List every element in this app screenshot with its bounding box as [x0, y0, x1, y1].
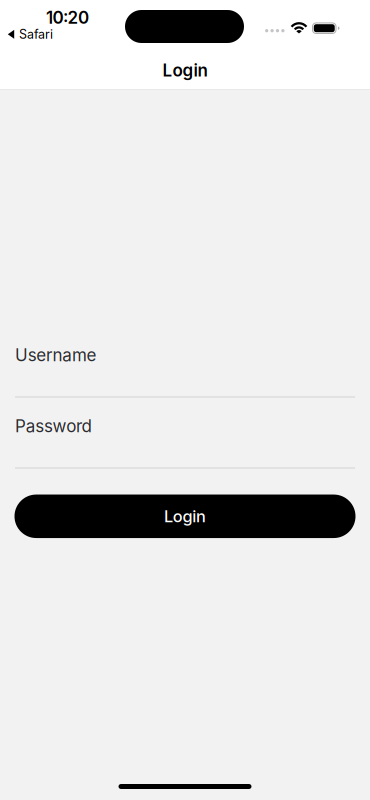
staticText: Username: [15, 345, 97, 365]
staticText: Login: [162, 60, 207, 81]
button[interactable]: Password: [15, 415, 355, 469]
staticText: 10:20: [46, 7, 89, 28]
staticText: Login: [164, 506, 206, 526]
button[interactable]: Login: [14, 494, 355, 538]
staticText: Safari: [19, 27, 53, 42]
staticText: Password: [15, 416, 92, 436]
button[interactable]: Username: [15, 344, 355, 398]
